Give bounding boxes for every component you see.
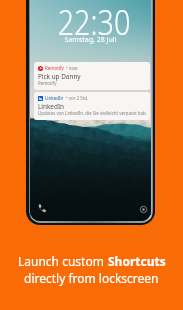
staticText: directly from lockscreen	[24, 270, 159, 286]
staticText: Updates von LinkedIn, die Sie vielleicht…	[38, 110, 150, 116]
button[interactable]: Phone	[35, 202, 47, 214]
button[interactable]: LinkedIn	[34, 92, 150, 120]
staticText: Launch custom	[18, 253, 108, 269]
staticText: Remotify	[38, 80, 150, 86]
staticText: Shortcuts	[108, 253, 166, 269]
staticText: Remotify	[45, 65, 64, 71]
staticText: LinkedIn	[38, 102, 65, 111]
staticText: Samstag, 28 Juli	[30, 35, 151, 45]
button[interactable]: Camera	[137, 203, 149, 215]
staticText: Pick up Danny	[38, 72, 81, 81]
staticText: • now	[66, 65, 78, 71]
staticText: 22:30	[58, 0, 130, 45]
button[interactable]: Remotify	[34, 62, 150, 90]
staticText: LinkedIn	[45, 95, 64, 101]
staticText: • vor 2 Std.	[66, 95, 89, 101]
